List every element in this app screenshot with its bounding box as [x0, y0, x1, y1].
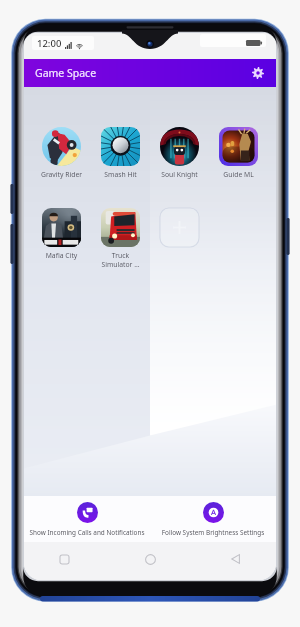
staticText: Smash Hit [91, 170, 150, 179]
staticText: Follow System Brightness Settings [150, 528, 276, 537]
button[interactable]: Guide ML [209, 127, 268, 179]
button[interactable]: Truck Simulator ... [91, 208, 150, 269]
button[interactable]: Smash Hit [91, 127, 150, 179]
staticText: Gravity Rider [32, 170, 91, 179]
button[interactable]: Back [222, 545, 250, 573]
button[interactable]: Home [136, 545, 164, 573]
button[interactable]: Gravity Rider [32, 127, 91, 179]
button[interactable]: Show Incoming Calls and Notifications [24, 496, 150, 542]
staticText: Show Incoming Calls and Notifications [24, 528, 150, 537]
staticText: Truck Simulator ... [91, 251, 150, 269]
staticText: Game Space [35, 66, 97, 80]
staticText: 12:00 [37, 37, 62, 50]
button[interactable]: Mafia City [32, 208, 91, 260]
button[interactable]: Recents [50, 545, 78, 573]
staticText: Mafia City [32, 251, 91, 260]
staticText: Soul Knight [150, 170, 209, 179]
button[interactable]: Soul Knight [150, 127, 209, 179]
button[interactable]: Follow System Brightness Settings [150, 496, 276, 542]
button[interactable]: Add game [150, 208, 209, 247]
button[interactable]: Settings [247, 62, 269, 84]
staticText: Guide ML [209, 170, 268, 179]
